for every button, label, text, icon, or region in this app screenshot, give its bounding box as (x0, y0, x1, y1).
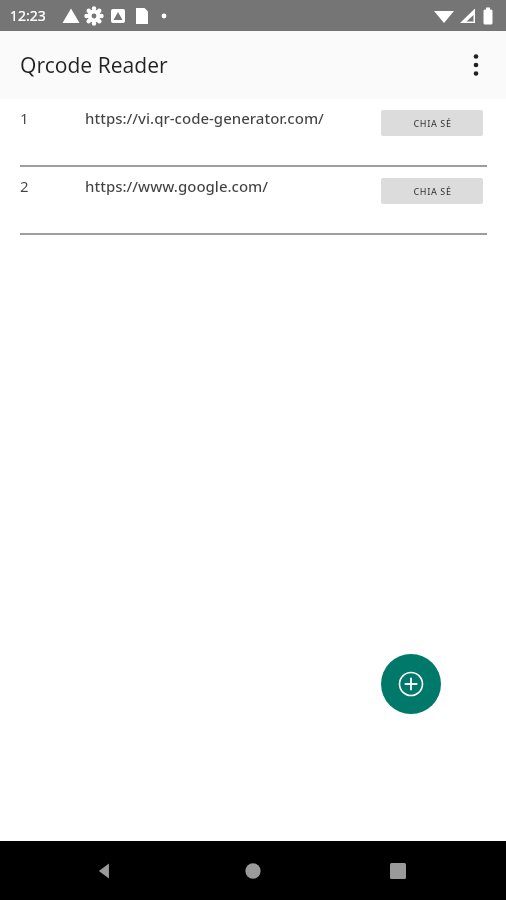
button[interactable]: CHIA SẺ (381, 178, 483, 204)
staticText: 12:23 (10, 6, 46, 25)
button[interactable]: Home (229, 847, 277, 895)
staticText: https://vi.qr-code-generator.com/ (85, 108, 324, 128)
staticText: 1 (20, 108, 29, 128)
staticText: Qrcode Reader (20, 51, 168, 80)
button[interactable]: CHIA SẺ (381, 110, 483, 136)
button[interactable]: Back (81, 847, 129, 895)
button[interactable]: Add (381, 654, 441, 714)
button[interactable]: More options (454, 43, 498, 87)
staticText: CHIA SẺ (413, 185, 452, 197)
staticText: https://www.google.com/ (85, 176, 269, 196)
staticText: 2 (20, 176, 29, 196)
button[interactable]: Recent apps (374, 847, 422, 895)
staticText: CHIA SẺ (413, 117, 452, 129)
button[interactable]: 1 (0, 99, 506, 165)
button[interactable]: 2 (0, 167, 506, 233)
